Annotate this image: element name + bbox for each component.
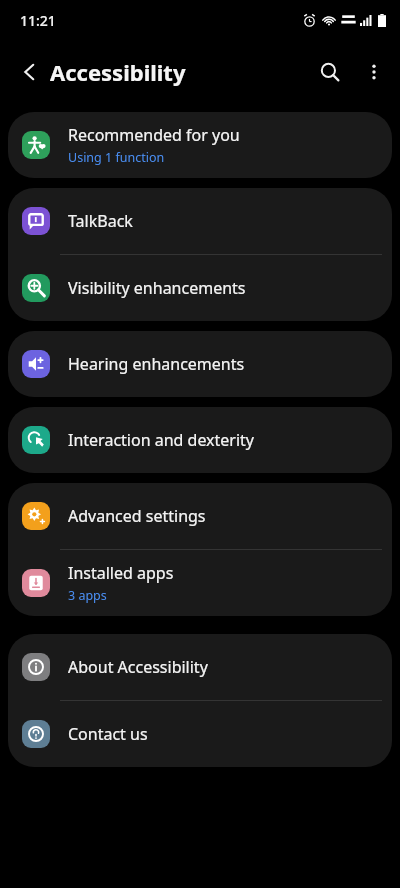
staticText: Recommended for you — [68, 124, 240, 146]
button[interactable]: Interaction and dexterity — [8, 407, 392, 473]
button[interactable]: Contact us — [8, 701, 392, 767]
staticText: Interaction and dexterity — [68, 429, 255, 451]
staticText: TalkBack — [68, 210, 133, 232]
staticText: 11:21 — [20, 11, 56, 30]
staticText: Visibility enhancements — [68, 277, 246, 299]
button[interactable]: Advanced settings — [8, 483, 392, 549]
button[interactable]: Recommended for you — [8, 112, 392, 178]
button[interactable]: Installed apps — [8, 550, 392, 616]
button[interactable]: More options — [352, 50, 396, 94]
staticText: Installed apps — [68, 562, 174, 584]
button[interactable]: TalkBack — [8, 188, 392, 254]
button[interactable]: Visibility enhancements — [8, 255, 392, 321]
staticText: Accessibility — [50, 57, 186, 87]
button[interactable]: Search — [308, 50, 352, 94]
staticText: Contact us — [68, 723, 148, 745]
staticText: Using 1 function — [68, 149, 165, 166]
staticText: Advanced settings — [68, 505, 206, 527]
staticText: 3 apps — [68, 587, 107, 604]
staticText: Hearing enhancements — [68, 353, 245, 375]
button[interactable]: Back — [8, 50, 52, 94]
button[interactable]: Hearing enhancements — [8, 331, 392, 397]
staticText: About Accessibility — [68, 656, 208, 678]
button[interactable]: About Accessibility — [8, 634, 392, 700]
